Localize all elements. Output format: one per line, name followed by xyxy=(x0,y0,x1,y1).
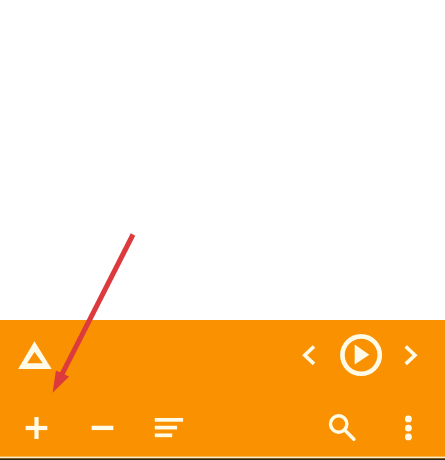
button[interactable]: Previous track xyxy=(287,333,331,377)
button[interactable]: Add xyxy=(14,405,60,451)
button[interactable]: Play xyxy=(337,331,385,379)
button[interactable]: Remove xyxy=(80,405,126,451)
button[interactable]: Search xyxy=(319,405,365,451)
button[interactable]: Sort xyxy=(146,405,192,451)
button[interactable]: Next track xyxy=(389,333,433,377)
button[interactable]: More options xyxy=(386,405,430,451)
button[interactable]: AIMP xyxy=(11,331,59,379)
